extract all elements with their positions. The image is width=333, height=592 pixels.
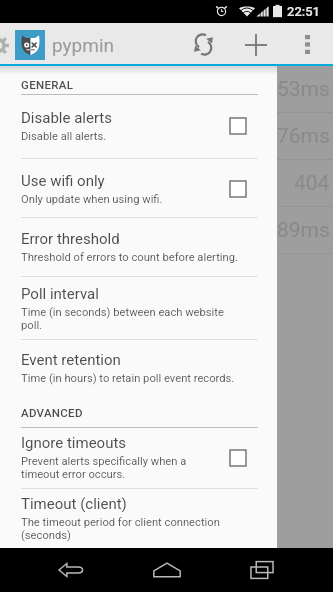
staticText: Time (in hours) to retain poll event rec… (21, 372, 235, 385)
staticText: poll. (21, 319, 43, 332)
staticText: Disable alerts (21, 109, 112, 127)
button[interactable]: Ignore timeouts (0, 427, 277, 488)
button[interactable]: 89ms (0, 207, 333, 254)
staticText: Error threshold (21, 230, 120, 248)
staticText: 404 (294, 171, 330, 196)
staticText: ADVANCED (21, 406, 83, 419)
staticText: Threshold of errors to count before aler… (21, 251, 238, 264)
button[interactable]: 53ms (0, 66, 333, 113)
button[interactable]: Event retention (0, 340, 277, 396)
staticText: Only update when using wifi. (21, 193, 163, 206)
staticText: The timeout period for client connection (21, 516, 220, 529)
button[interactable]: Back (46, 548, 96, 592)
staticText: 76ms (277, 124, 330, 149)
staticText: timeout error occurs. (21, 468, 126, 481)
staticText: 89ms (277, 218, 330, 243)
staticText: Event retention (21, 351, 121, 369)
button[interactable]: Error threshold (0, 218, 277, 276)
staticText: Timeout (client) (21, 495, 127, 513)
button[interactable]: Use wifi only (0, 159, 277, 218)
button[interactable]: 404 (0, 160, 333, 207)
staticText: Prevent alerts specifically when a (21, 455, 187, 468)
staticText: Ignore timeouts (21, 434, 127, 452)
button[interactable]: Recents (237, 548, 287, 592)
button[interactable]: 76ms (0, 113, 333, 160)
staticText: pypmin (52, 34, 115, 56)
staticText: GENERAL (21, 78, 74, 91)
staticText: (seconds) (21, 529, 71, 542)
button[interactable]: Refresh (177, 23, 230, 66)
button[interactable]: Home (142, 548, 192, 592)
staticText: 53ms (277, 77, 330, 102)
staticText: 22:51 (287, 4, 320, 19)
button[interactable]: Timeout (client) (0, 489, 277, 548)
staticText: Use wifi only (21, 172, 105, 190)
button[interactable]: More options (289, 23, 326, 66)
button[interactable]: Add (230, 23, 281, 66)
staticText: Disable all alerts. (21, 130, 107, 143)
staticText: Time (in seconds) between each website (21, 306, 224, 319)
staticText: Poll interval (21, 285, 99, 303)
button[interactable]: Disable alerts (0, 94, 277, 158)
button[interactable]: Poll interval (0, 277, 277, 339)
